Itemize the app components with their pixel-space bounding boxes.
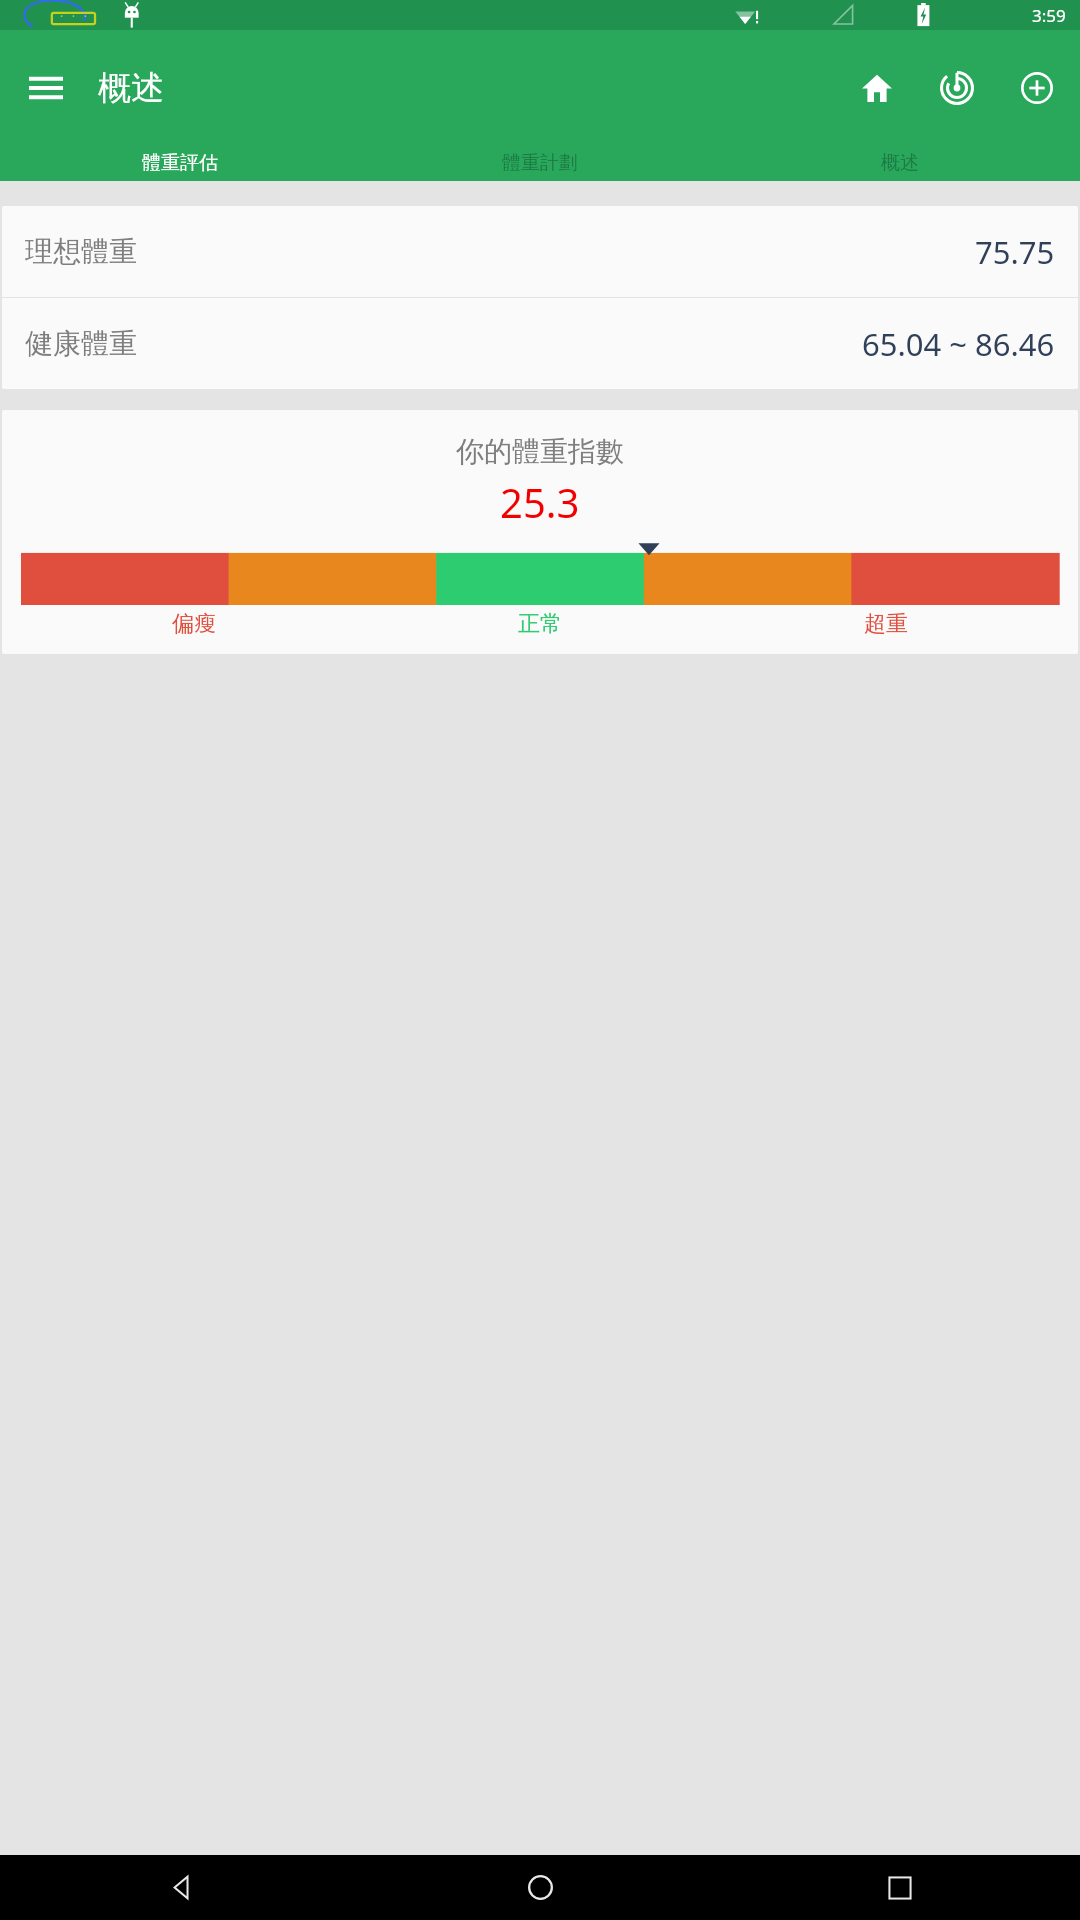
button[interactable]: Recent apps: [720, 1855, 1080, 1920]
button[interactable]: 體重評估: [0, 145, 360, 181]
staticText: 你的體重指數: [456, 434, 624, 469]
button[interactable]: Back: [0, 1855, 360, 1920]
staticText: 偏瘦: [172, 610, 216, 638]
staticText: 超重: [864, 610, 908, 638]
button[interactable]: 概述: [720, 145, 1080, 181]
staticText: 概述: [98, 67, 164, 109]
button[interactable]: Home: [846, 57, 908, 119]
staticText: 3:59: [1032, 4, 1066, 27]
staticText: 理想體重: [25, 234, 137, 269]
staticText: 健康體重: [25, 326, 137, 361]
staticText: 25.3: [500, 475, 580, 529]
staticText: 正常: [518, 610, 562, 638]
button[interactable]: 健康體重: [2, 298, 1078, 389]
staticText: 體重計劃: [502, 151, 578, 175]
staticText: 概述: [881, 151, 919, 175]
button[interactable]: 理想體重: [2, 206, 1078, 297]
staticText: 體重評估: [142, 151, 218, 175]
button[interactable]: Measure: [926, 57, 988, 119]
button[interactable]: Add entry: [1006, 57, 1068, 119]
button[interactable]: 體重計劃: [360, 145, 720, 181]
button[interactable]: Home: [360, 1855, 720, 1920]
staticText: 65.04 ~ 86.46: [862, 323, 1055, 365]
staticText: 75.75: [975, 231, 1055, 273]
button[interactable]: Open navigation menu: [18, 60, 74, 116]
